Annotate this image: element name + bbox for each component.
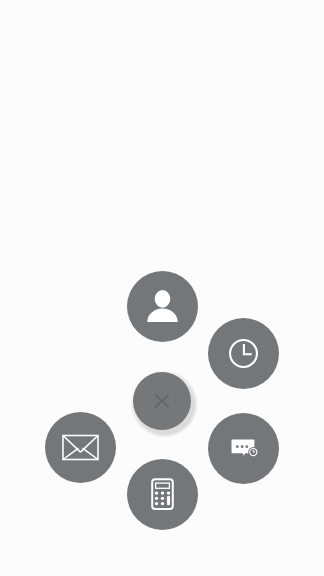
button[interactable]: Close menu — [133, 372, 191, 430]
button[interactable]: Calculator — [127, 459, 198, 530]
button[interactable]: Contacts — [127, 271, 198, 342]
button[interactable]: Email — [45, 412, 116, 483]
button[interactable]: Alarm — [208, 318, 279, 389]
button[interactable]: Messages — [208, 413, 279, 484]
